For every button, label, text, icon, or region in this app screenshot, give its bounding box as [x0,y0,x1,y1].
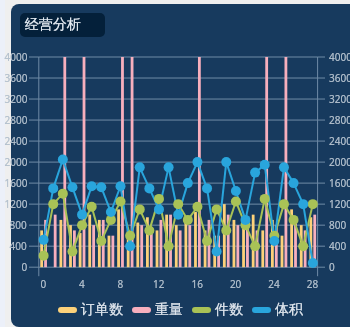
button[interactable]: 件数 [192,301,243,319]
button[interactable]: 体积 [252,301,303,319]
staticText: 经营分析 [25,16,81,34]
button[interactable]: 经营分析 [20,13,105,37]
button[interactable]: 订单数 [58,301,123,319]
staticText: 体积 [275,301,303,319]
staticText: 重量 [155,301,183,319]
staticText: 订单数 [81,301,123,319]
button[interactable]: 重量 [132,301,183,319]
staticText: 件数 [215,301,243,319]
